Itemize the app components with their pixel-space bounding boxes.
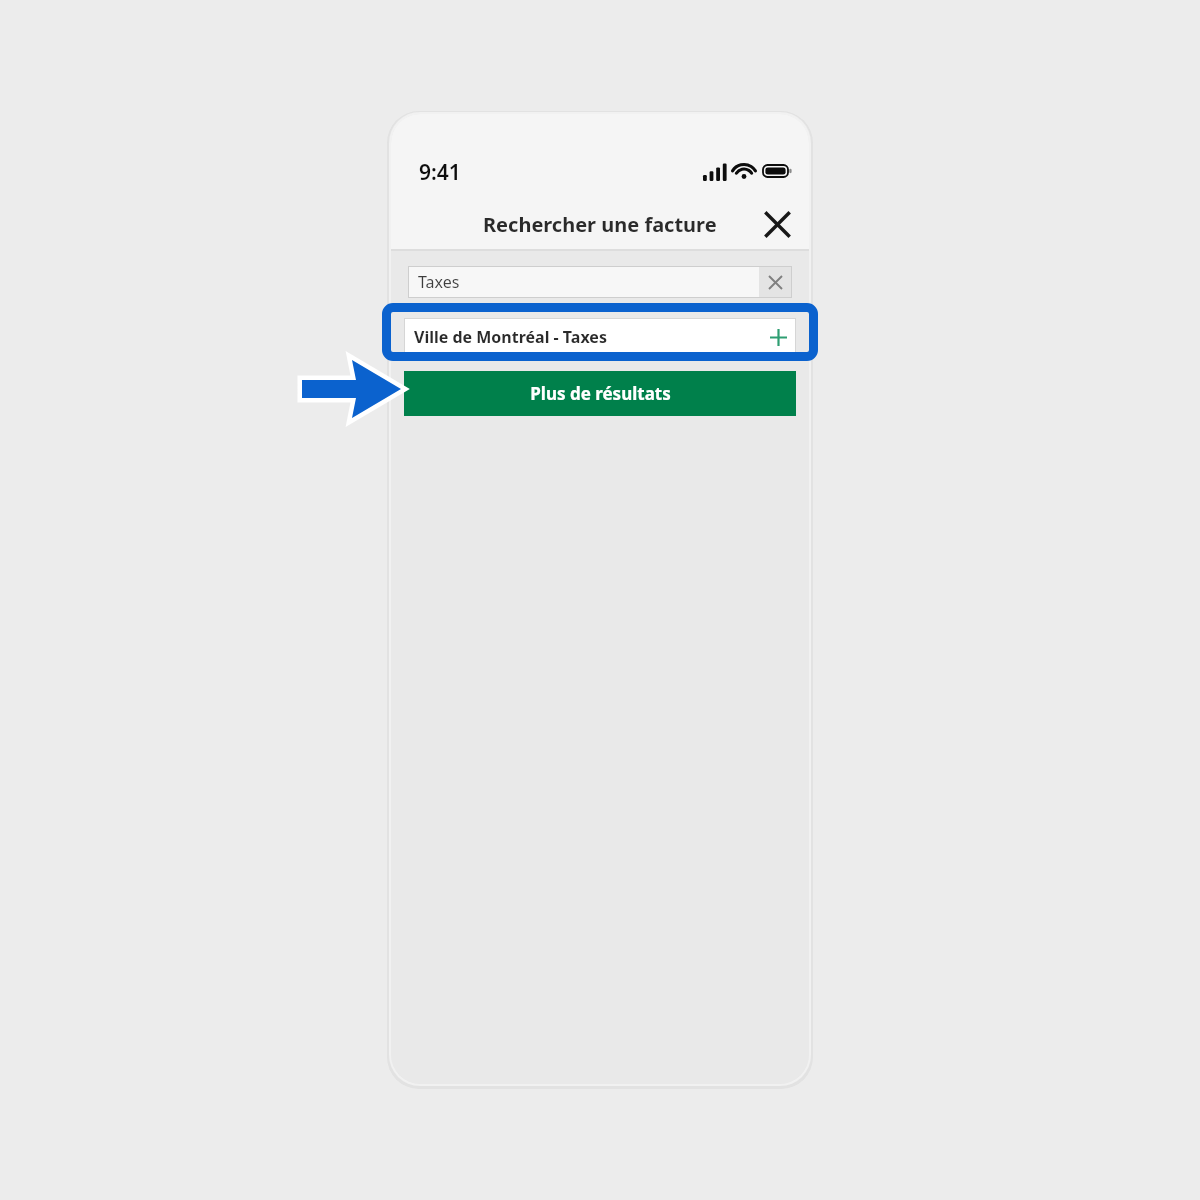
staticText: 9:41 xyxy=(419,158,461,184)
staticText: Taxes xyxy=(418,271,460,293)
button[interactable]: Fermer xyxy=(755,202,799,246)
staticText: Rechercher une facture xyxy=(483,211,717,238)
staticText: Ville de Montréal - Taxes xyxy=(414,326,760,348)
button[interactable]: Ville de Montréal - Taxes xyxy=(404,318,796,356)
staticText: Plus de résultats xyxy=(530,382,671,405)
button[interactable]: Effacer la recherche xyxy=(759,266,792,298)
button[interactable]: Taxes xyxy=(408,266,792,298)
button[interactable]: Plus de résultats xyxy=(404,371,796,416)
